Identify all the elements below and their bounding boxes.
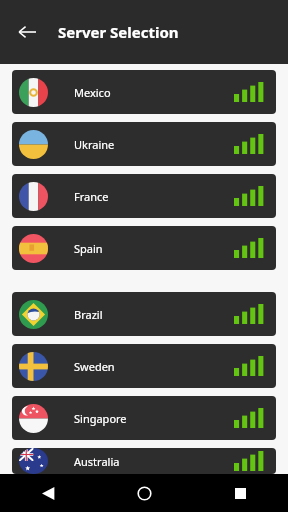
staticText: France [74,189,234,204]
staticText: Server Selection [58,22,179,42]
button[interactable]: Back [33,478,63,508]
staticText: Brazil [74,307,234,322]
button[interactable]: France [12,174,276,218]
button[interactable]: Mexico [12,70,276,114]
button[interactable]: Brazil [12,292,276,336]
button[interactable]: Sweden [12,344,276,388]
button[interactable]: Home [129,478,159,508]
staticText: Spain [74,241,234,256]
staticText: Mexico [74,85,234,100]
button[interactable]: Australia [12,448,276,474]
staticText: Singapore [74,411,234,426]
button[interactable]: Recent apps [225,478,255,508]
staticText: Australia [74,454,234,469]
staticText: Sweden [74,359,234,374]
button[interactable]: Ukraine [12,122,276,166]
staticText: Ukraine [74,137,234,152]
button[interactable]: Singapore [12,396,276,440]
button[interactable]: Spain [12,226,276,270]
button[interactable]: Back [10,15,44,49]
